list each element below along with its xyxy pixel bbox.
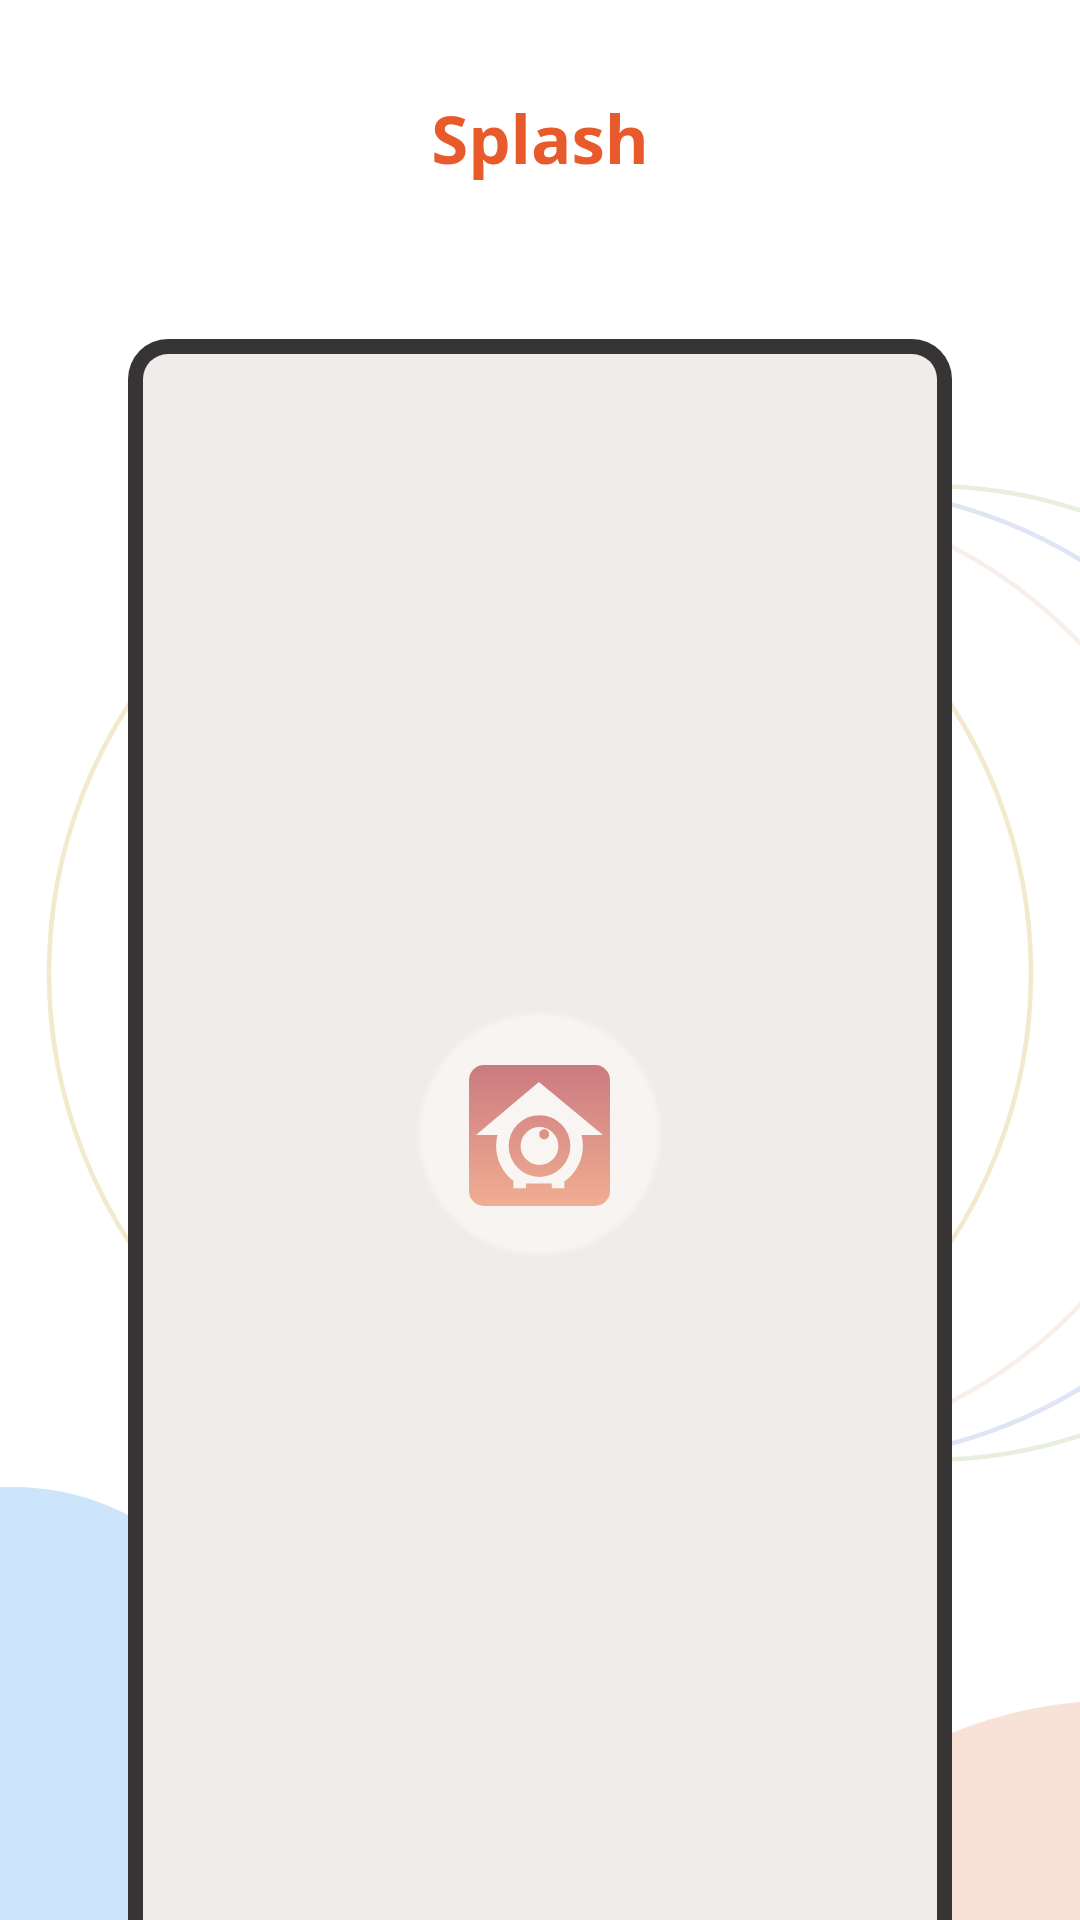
staticText: Splash [431,92,649,183]
button[interactable]: Open app [469,1065,610,1206]
